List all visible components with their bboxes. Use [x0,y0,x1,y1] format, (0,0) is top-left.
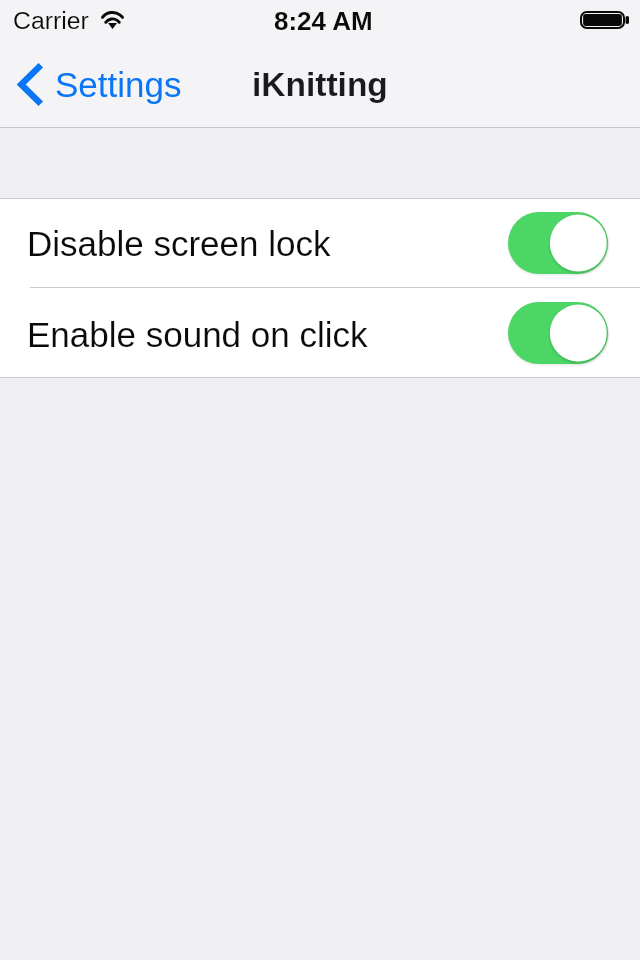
button[interactable]: Disable screen lock [0,199,640,287]
staticText: iKnitting [252,66,388,103]
staticText: Carrier [13,7,89,35]
staticText: Settings [55,65,182,104]
staticText: 8:24 AM [274,6,373,35]
other: Back to Settings [18,62,44,107]
button[interactable]: Enable sound on click [0,288,640,377]
button[interactable]: Back to Settings [0,54,194,115]
button[interactable]: Disable screen lock [508,212,608,274]
button[interactable]: Enable sound on click [508,302,608,364]
staticText: Disable screen lock [27,224,331,263]
other: Wi-Fi signal [101,11,124,29]
other: Battery full [580,11,629,29]
staticText: Enable sound on click [27,315,368,354]
